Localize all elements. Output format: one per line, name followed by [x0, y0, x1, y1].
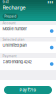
staticText: 9:41 [2, 0, 8, 4]
staticText: Card ending 4242 [2, 60, 31, 64]
staticText: Payment [2, 54, 16, 58]
button[interactable]: Pay ₹719 [4, 86, 52, 94]
staticText: Pay ₹719 [19, 88, 36, 92]
staticText: Unlimited plan [2, 43, 26, 48]
staticText: Recharge [2, 4, 25, 11]
button[interactable]: Prepaid [2, 13, 18, 19]
staticText: Selected plan [2, 38, 24, 41]
staticText: Account [2, 21, 15, 25]
staticText: Mobile number [2, 27, 26, 31]
button[interactable]: Unlimited plan [0, 41, 56, 54]
staticText: Prepaid [4, 14, 16, 18]
staticText: ▮▮▮ [47, 0, 53, 4]
button[interactable]: Mobile number [0, 25, 56, 37]
button[interactable]: Card ending 4242 [0, 58, 56, 70]
